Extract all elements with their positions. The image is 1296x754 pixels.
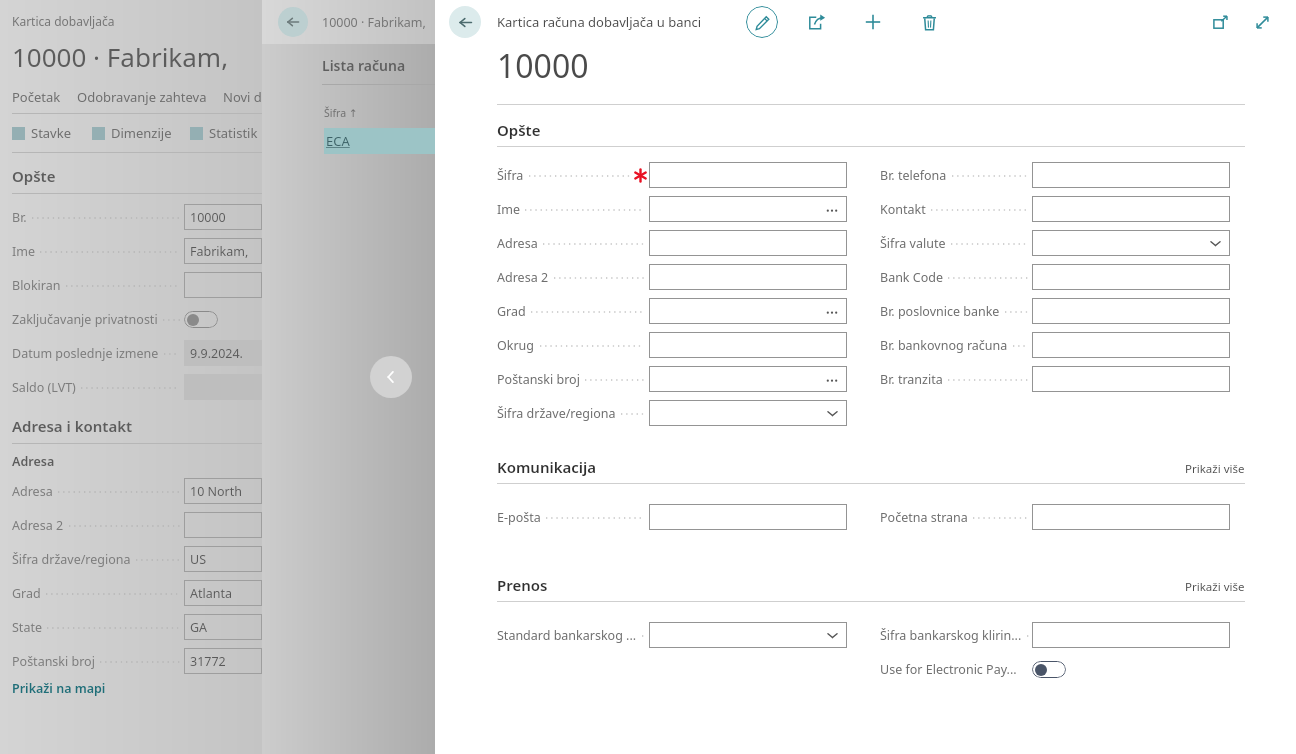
button[interactable]: Use for Electronic Payments toggle xyxy=(1032,661,1066,678)
staticText: Adresa i kontakt xyxy=(12,416,133,436)
staticText: Šifra xyxy=(497,167,524,184)
staticText: Ime xyxy=(12,243,35,260)
staticText: State xyxy=(12,619,42,636)
staticText: Br. tranzita xyxy=(880,371,943,388)
button[interactable]: Delete xyxy=(914,7,944,37)
staticText: Standard bankarskog ... xyxy=(497,627,637,644)
button[interactable]: Open in new window xyxy=(1206,8,1234,36)
staticText: Šifra države/regiona xyxy=(12,551,131,568)
button[interactable]: New xyxy=(858,7,888,37)
staticText: Prenos xyxy=(497,575,548,595)
staticText: Prikaži na mapi xyxy=(12,680,106,697)
button[interactable] xyxy=(1032,504,1230,530)
staticText: Poštanski broj xyxy=(497,371,580,388)
staticText: Adresa xyxy=(12,483,53,500)
staticText: E-pošta xyxy=(497,509,541,526)
staticText: ECA xyxy=(326,132,350,150)
button[interactable] xyxy=(649,298,847,324)
button[interactable] xyxy=(649,264,847,290)
staticText: Adresa xyxy=(12,453,55,470)
button[interactable] xyxy=(649,400,847,426)
button[interactable] xyxy=(649,332,847,358)
button[interactable] xyxy=(649,230,847,256)
button[interactable]: Expand xyxy=(1248,8,1276,36)
button[interactable] xyxy=(649,504,847,530)
button[interactable]: Back xyxy=(278,7,308,37)
staticText: Saldo (LVT) xyxy=(12,379,76,396)
staticText: Okrug xyxy=(497,337,535,354)
button[interactable] xyxy=(649,366,847,392)
button[interactable] xyxy=(1032,162,1230,188)
staticText: GA xyxy=(190,619,208,636)
button[interactable] xyxy=(649,196,847,222)
staticText: Poštanski broj xyxy=(12,653,95,670)
staticText: Početak xyxy=(12,88,61,106)
staticText: Ime xyxy=(497,201,520,218)
staticText: Br. poslovnice banke xyxy=(880,303,1000,320)
button[interactable]: ECA xyxy=(324,128,435,154)
staticText: Opšte xyxy=(497,120,541,140)
staticText: Datum poslednje izmene xyxy=(12,345,159,362)
staticText: Komunikacija xyxy=(497,457,597,477)
staticText: Fabrikam, Inc xyxy=(190,243,262,260)
button[interactable]: Prikaži više xyxy=(1185,579,1245,595)
button[interactable] xyxy=(1032,622,1230,648)
staticText: Kontakt xyxy=(880,201,926,218)
button[interactable] xyxy=(1032,298,1230,324)
staticText: 10000 · Fabrikam, Inc. xyxy=(12,39,262,74)
button[interactable]: Edit xyxy=(746,6,778,38)
staticText: 31772 xyxy=(190,653,226,670)
button[interactable]: Prikaži više xyxy=(1185,461,1245,477)
staticText: Atlanta xyxy=(190,585,232,602)
staticText: Adresa 2 xyxy=(497,269,549,286)
button[interactable] xyxy=(1032,264,1230,290)
button[interactable] xyxy=(1032,196,1230,222)
button[interactable]: Back xyxy=(449,6,481,38)
button[interactable]: Collapse panel xyxy=(370,356,412,398)
button[interactable] xyxy=(1032,230,1230,256)
staticText: Grad xyxy=(497,303,526,320)
staticText: Prikaži više xyxy=(1185,461,1245,477)
staticText: Grad xyxy=(12,585,41,602)
staticText: 10000 xyxy=(497,44,589,88)
button[interactable] xyxy=(1032,366,1230,392)
staticText: Lista računa dobavlj xyxy=(322,56,435,75)
staticText: Šifra države/regiona xyxy=(497,405,616,422)
staticText: Br. xyxy=(12,209,27,226)
button[interactable] xyxy=(649,162,847,188)
staticText: Kartica računa dobavljača u banci xyxy=(497,13,702,31)
button[interactable]: Privacy lock toggle xyxy=(184,311,218,328)
staticText: Novi d xyxy=(223,88,262,106)
staticText: Stavke xyxy=(31,124,72,142)
button[interactable] xyxy=(649,622,847,648)
staticText: Kartica dobavljača xyxy=(12,13,115,29)
staticText: 9.9.2024. xyxy=(190,345,243,362)
staticText: Početna strana xyxy=(880,509,968,526)
staticText: Bank Code xyxy=(880,269,943,286)
staticText: Adresa 2 xyxy=(12,517,64,534)
staticText: Statistik xyxy=(209,124,258,142)
staticText: Šifra valute xyxy=(880,235,946,252)
staticText: Šifra bankarskog klirin... xyxy=(880,627,1022,644)
staticText: Prikaži više xyxy=(1185,579,1245,595)
staticText: Use for Electronic Pay... xyxy=(880,661,1017,678)
staticText: US xyxy=(190,551,207,568)
button[interactable]: Share xyxy=(802,7,832,37)
staticText: Dimenzije xyxy=(111,124,172,142)
staticText: 10 North Lake xyxy=(190,483,262,500)
staticText: Šifra ↑ xyxy=(324,106,358,120)
staticText: 10000 · Fabrikam, In xyxy=(322,14,435,31)
button[interactable] xyxy=(1032,332,1230,358)
staticText: 10000 xyxy=(190,209,226,226)
staticText: Blokiran xyxy=(12,277,61,294)
staticText: Br. bankovnog računa xyxy=(880,337,1008,354)
staticText: Zaključavanje privatnosti xyxy=(12,311,158,328)
staticText: Opšte xyxy=(12,166,56,186)
staticText: Odobravanje zahteva xyxy=(77,88,207,106)
staticText: Adresa xyxy=(497,235,538,252)
staticText: Br. telefona xyxy=(880,167,947,184)
